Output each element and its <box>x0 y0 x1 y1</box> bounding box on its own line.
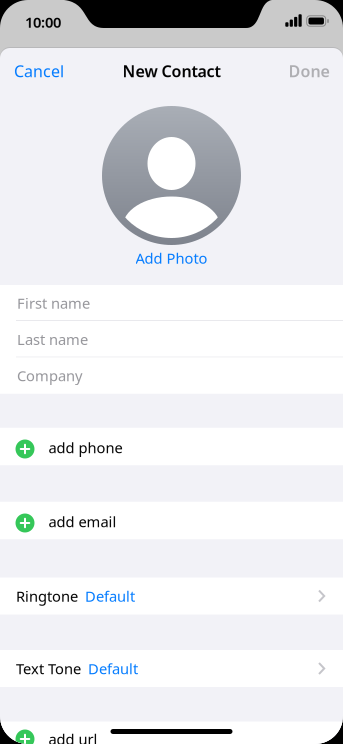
staticText: First name <box>17 293 90 313</box>
staticText: add email <box>48 512 116 531</box>
button[interactable]: add url <box>0 721 343 744</box>
button[interactable]: add email <box>0 502 343 539</box>
staticText: Add Photo <box>135 248 207 268</box>
staticText: Default <box>85 586 135 606</box>
staticText: Text Tone <box>16 659 81 678</box>
button[interactable]: Ringtone <box>0 577 343 614</box>
staticText: Company <box>17 366 82 385</box>
staticText: 10:00 <box>25 12 61 32</box>
button[interactable]: Last name <box>0 321 343 357</box>
button[interactable]: add phone <box>0 428 343 465</box>
button[interactable]: Add Photo <box>131 244 211 272</box>
staticText: Default <box>88 659 138 678</box>
staticText: New Contact <box>122 60 220 82</box>
staticText: add phone <box>48 438 122 457</box>
button[interactable]: Company <box>0 357 343 393</box>
staticText: Done <box>288 60 329 82</box>
button[interactable]: Done <box>282 54 335 88</box>
button[interactable]: Cancel <box>8 54 70 88</box>
button[interactable]: First name <box>0 285 343 321</box>
staticText: Cancel <box>14 60 64 82</box>
button[interactable]: Text Tone <box>0 650 343 687</box>
staticText: add url <box>48 729 97 744</box>
staticText: Last name <box>17 329 88 349</box>
staticText: Ringtone <box>16 586 78 606</box>
